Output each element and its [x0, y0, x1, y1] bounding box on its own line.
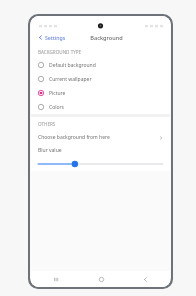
staticText: BACKGROUND TYPE	[38, 49, 82, 55]
button[interactable]: Choose background from here	[31, 130, 170, 145]
staticText: Default background	[49, 62, 96, 69]
button[interactable]: Colors	[31, 100, 170, 114]
staticText: OTHERS	[38, 121, 56, 127]
button[interactable]: Blur value	[31, 145, 170, 171]
staticText: Blur value	[38, 147, 62, 154]
staticText: Colors	[49, 104, 64, 111]
button[interactable]: Current wallpaper	[31, 72, 170, 86]
button[interactable]: Default background	[31, 58, 170, 72]
button[interactable]: Home	[94, 272, 108, 286]
button[interactable]: Back	[138, 272, 152, 286]
button[interactable]: Picture	[31, 86, 170, 100]
button[interactable]: Recents	[49, 272, 63, 286]
staticText: Picture	[49, 90, 66, 97]
staticText: Choose background from here	[38, 134, 110, 141]
staticText: Settings	[45, 34, 66, 41]
button[interactable]: Settings	[37, 32, 67, 43]
staticText: Current wallpaper	[49, 76, 92, 83]
staticText: Background	[90, 34, 123, 42]
